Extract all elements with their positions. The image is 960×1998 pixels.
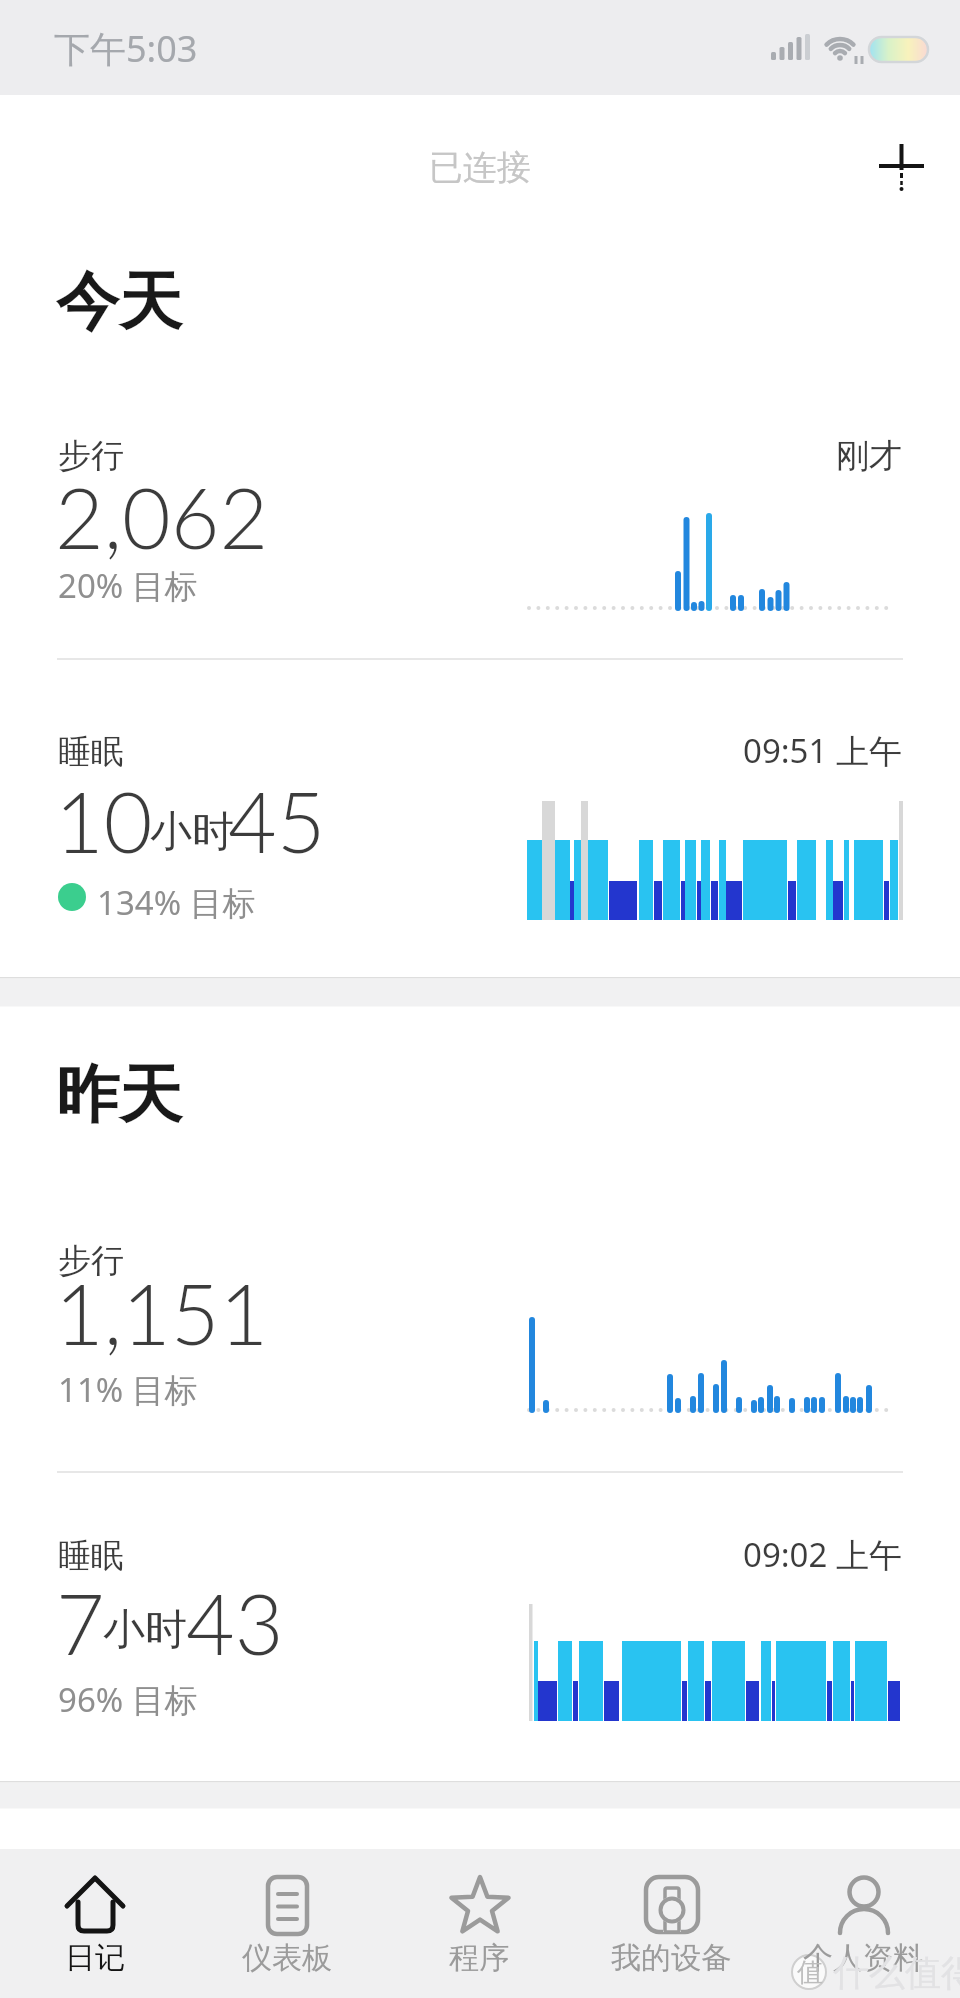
staticText: 7 (56, 1572, 105, 1673)
staticText: 20% 目标 (58, 563, 198, 608)
staticText: 睡眠 (58, 731, 124, 773)
button[interactable] (768, 1855, 960, 1998)
staticText: 43 (186, 1572, 284, 1673)
staticText: 下午5:03 (54, 24, 198, 73)
button[interactable] (30, 700, 930, 950)
staticText: 步行 (58, 1240, 124, 1282)
staticText: 11% 目标 (58, 1367, 198, 1412)
staticText: 我的设备 (611, 1939, 731, 1977)
staticText: 09:51 上午 (743, 728, 902, 773)
staticText: 步行 (58, 435, 124, 477)
button[interactable] (860, 125, 940, 205)
staticText: 小时 (103, 1604, 187, 1657)
staticText: 仪表板 (242, 1939, 332, 1977)
staticText: 96% 目标 (58, 1677, 198, 1722)
staticText: 刚才 (836, 435, 902, 477)
staticText: 睡眠 (58, 1535, 124, 1577)
staticText: 程序 (449, 1939, 509, 1977)
staticText: 个人资料 (803, 1939, 923, 1977)
button[interactable] (576, 1855, 768, 1998)
staticText: 134% 目标 (97, 880, 256, 925)
button[interactable] (30, 1215, 930, 1455)
button[interactable] (0, 1855, 192, 1998)
button[interactable] (384, 1855, 576, 1998)
button[interactable] (192, 1855, 384, 1998)
staticText: 2,062 (55, 466, 269, 567)
staticText: 今天 (56, 262, 182, 341)
button[interactable] (30, 410, 930, 650)
staticText: 1,151 (55, 1262, 269, 1363)
staticText: 10 (55, 770, 153, 871)
staticText: 已连接 (429, 146, 531, 189)
staticText: 值 (797, 1956, 823, 1989)
staticText: 45 (228, 770, 326, 871)
staticText: 09:02 上午 (743, 1532, 902, 1577)
staticText: 小时 (150, 806, 234, 859)
staticText: 什么值得买 (833, 1950, 960, 1995)
staticText: 昨天 (56, 1055, 182, 1134)
button[interactable] (30, 1505, 930, 1755)
staticText: 日记 (65, 1939, 125, 1977)
